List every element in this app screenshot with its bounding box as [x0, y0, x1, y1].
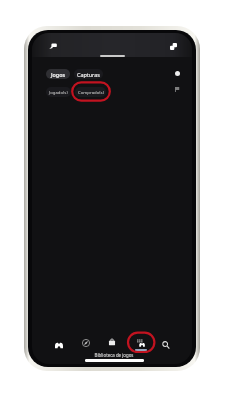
button[interactable]: Jogado(s) — [46, 87, 71, 97]
button[interactable]: Jogos — [46, 69, 70, 79]
button[interactable]: Mensagens — [49, 42, 57, 50]
button[interactable]: Loja — [102, 335, 122, 352]
button[interactable]: Pesquisar — [156, 338, 176, 355]
staticText: Comprado(s) — [78, 89, 104, 95]
staticText: Capturas — [77, 71, 100, 78]
button[interactable]: Jogos — [49, 338, 69, 355]
staticText: Jogado(s) — [49, 89, 68, 95]
staticText: Biblioteca de jogos — [34, 352, 192, 358]
staticText: Jogos — [51, 71, 66, 78]
button[interactable]: Comprado(s) — [75, 87, 106, 97]
button[interactable]: Janelas — [170, 43, 177, 50]
button[interactable]: Biblioteca — [131, 336, 151, 353]
button[interactable]: Capturas — [74, 69, 103, 79]
button[interactable]: Explorar — [76, 336, 96, 353]
